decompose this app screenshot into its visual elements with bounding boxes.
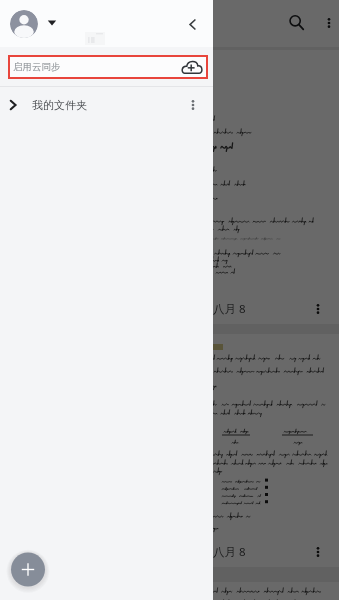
button[interactable] bbox=[0, 582, 339, 600]
staticText: 启用云同步 bbox=[13, 61, 61, 73]
button[interactable]: Collapse drawer bbox=[177, 9, 207, 39]
button[interactable]: Switch account bbox=[44, 15, 60, 31]
button[interactable]: 我的文件夹 bbox=[0, 88, 213, 122]
staticText: 八月 8 bbox=[213, 301, 246, 317]
staticText: 八月 8 bbox=[213, 544, 246, 560]
button[interactable]: More options bbox=[319, 14, 339, 33]
staticText: 我的文件夹 bbox=[32, 98, 87, 112]
button[interactable]: Folder options bbox=[180, 92, 206, 118]
button[interactable]: Note options bbox=[304, 538, 332, 566]
button[interactable]: 启用云同步 bbox=[8, 55, 208, 79]
button[interactable]: New note bbox=[5, 547, 51, 593]
button[interactable]: 八月 8 bbox=[0, 334, 339, 567]
button[interactable]: Account bbox=[10, 10, 38, 38]
button[interactable]: Note options bbox=[304, 295, 332, 323]
button[interactable]: Search bbox=[280, 8, 312, 38]
button[interactable]: 八月 8 bbox=[0, 50, 339, 324]
